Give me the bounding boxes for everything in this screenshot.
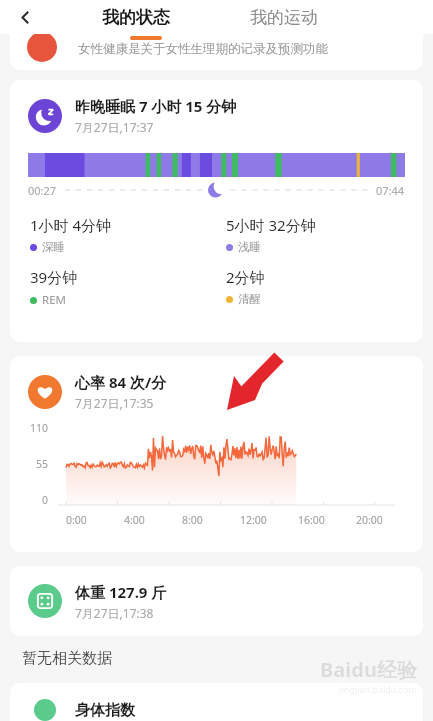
staticText: 5小时 32分钟: [226, 215, 316, 235]
staticText: REM: [42, 292, 66, 308]
staticText: 深睡: [42, 240, 65, 254]
staticText: 我的状态: [102, 7, 170, 28]
button[interactable]: 女性健康是关于女性生理期的记录及预测功能: [10, 34, 423, 70]
staticText: 清醒: [238, 292, 261, 306]
staticText: 女性健康是关于女性生理期的记录及预测功能: [78, 41, 328, 57]
staticText: 浅睡: [238, 240, 261, 254]
staticText: 暂无相关数据: [22, 649, 112, 668]
staticText: 55: [36, 457, 49, 471]
staticText: 0: [42, 493, 49, 507]
staticText: 心率 84 次/分: [75, 372, 167, 392]
staticText: 4:00: [124, 513, 145, 527]
staticText: 体重 127.9 斤: [75, 582, 167, 602]
staticText: 12:00: [240, 513, 267, 527]
button[interactable]: 体重 127.9 斤: [10, 566, 423, 636]
button[interactable]: 身体指数: [10, 683, 423, 721]
staticText: 身体指数: [75, 701, 135, 720]
staticText: 我的运动: [250, 7, 318, 28]
button[interactable]: 心率 84 次/分: [10, 356, 423, 552]
staticText: 7月27日,17:35: [75, 395, 154, 411]
button[interactable]: 昨晚睡眠 7 小时 15 分钟: [10, 80, 423, 342]
button[interactable]: 我的状态: [102, 7, 170, 28]
staticText: 1小时 4分钟: [30, 215, 112, 235]
staticText: 00:27: [28, 183, 57, 198]
staticText: 16:00: [298, 513, 325, 527]
staticText: 7月27日,17:38: [75, 605, 154, 621]
staticText: 8:00: [182, 513, 203, 527]
staticText: 0:00: [66, 513, 87, 527]
staticText: 07:44: [376, 183, 405, 198]
staticText: 7月27日,17:37: [75, 119, 154, 135]
staticText: 110: [30, 421, 49, 435]
button[interactable]: 我的运动: [250, 7, 318, 28]
staticText: 2分钟: [226, 267, 265, 287]
staticText: 20:00: [356, 513, 383, 527]
staticText: Baidu经验: [320, 656, 417, 683]
staticText: 39分钟: [30, 267, 78, 287]
staticText: 昨晚睡眠 7 小时 15 分钟: [75, 96, 237, 116]
button[interactable]: Back: [8, 0, 42, 34]
staticText: jingyan.baidu.com: [339, 683, 417, 695]
